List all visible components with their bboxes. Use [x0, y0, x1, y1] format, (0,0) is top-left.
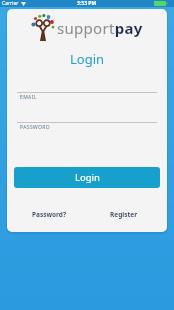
button[interactable]: Password?	[25, 206, 73, 222]
staticText: Carrier	[2, 0, 19, 7]
button[interactable]: Register	[103, 206, 145, 222]
staticText: Password?	[32, 210, 67, 219]
staticText: PASSWORD	[20, 124, 50, 131]
staticText: Login	[70, 50, 105, 68]
staticText: supportpay	[57, 18, 143, 38]
staticText: 3:53 PM	[77, 0, 97, 7]
staticText: EMAIL	[20, 94, 37, 101]
button[interactable]	[17, 79, 157, 93]
button[interactable]: Login	[14, 167, 160, 188]
staticText: Login	[75, 171, 100, 184]
staticText: Register	[110, 210, 138, 219]
button[interactable]	[17, 109, 157, 123]
